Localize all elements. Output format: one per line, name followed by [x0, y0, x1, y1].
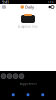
button[interactable]: Back — [12, 93, 15, 96]
button[interactable]: Search — [51, 5, 54, 8]
button[interactable]: Menu — [2, 5, 6, 9]
staticText: Daily — [24, 4, 34, 10]
button[interactable]: Profile — [48, 6, 51, 8]
staticText: Suggestions — [19, 82, 36, 85]
button[interactable]: Action — [1, 74, 6, 79]
staticText: 9:41 — [2, 0, 9, 5]
button[interactable]: Profile — [41, 93, 44, 96]
button[interactable]: Action — [19, 74, 24, 79]
staticText: ••• — [48, 0, 54, 5]
button[interactable]: Home — [26, 93, 29, 96]
button[interactable]: Action — [7, 74, 12, 79]
staticText: A caption line — [18, 25, 38, 28]
button[interactable]: Action — [13, 74, 18, 79]
